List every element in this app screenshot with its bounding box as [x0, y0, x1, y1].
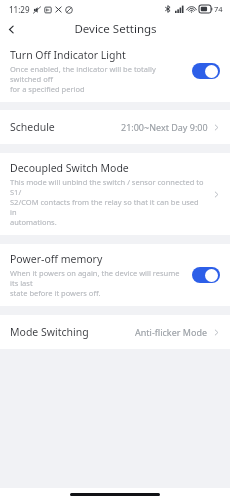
staticText: When it powers on again, the device will… [10, 268, 186, 298]
button[interactable]: Decoupled Switch Mode [0, 153, 230, 235]
staticText: Device Settings [74, 21, 157, 37]
button[interactable]: Toggle [192, 267, 220, 283]
staticText: This mode will unbind the switch / senso… [10, 177, 207, 227]
staticText: Anti-flicker Mode [135, 326, 208, 338]
staticText: Decoupled Switch Mode [10, 161, 129, 175]
button[interactable]: Mode Switching [0, 315, 230, 349]
staticText: 11:29 [9, 4, 30, 15]
staticText: Once enabled, the indicator will be tota… [10, 64, 186, 94]
staticText: Mode Switching [10, 325, 135, 339]
staticText: 74 [214, 4, 223, 14]
button[interactable]: Schedule [0, 110, 230, 144]
staticText: Power-off memory [10, 252, 103, 266]
staticText: Schedule [10, 120, 121, 134]
button[interactable]: Power-off memory [0, 244, 230, 306]
staticText: Turn Off Indicator Light [10, 48, 126, 62]
button[interactable]: Turn Off Indicator Light [0, 40, 230, 102]
button[interactable]: Toggle [192, 63, 220, 79]
button[interactable]: Back [0, 18, 22, 40]
staticText: 21:00~Next Day 9:00 [121, 121, 208, 133]
